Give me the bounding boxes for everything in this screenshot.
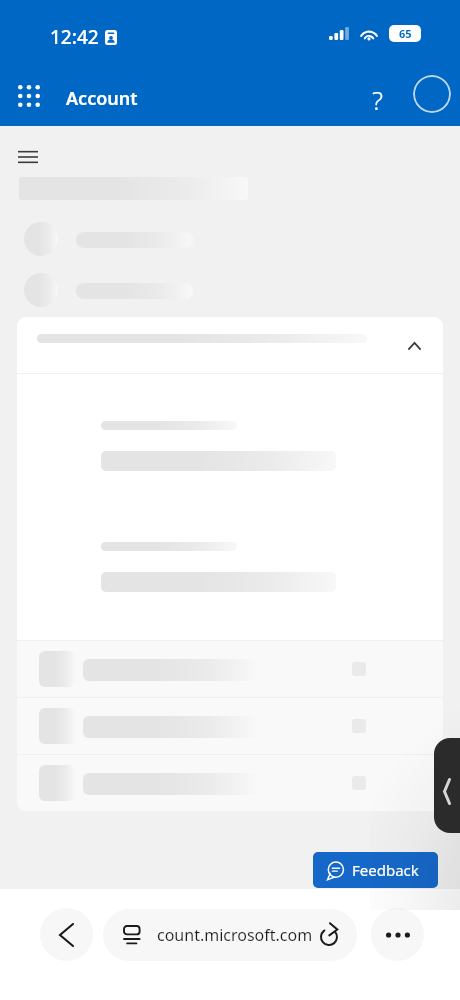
button[interactable] <box>17 641 443 697</box>
button[interactable]: Help <box>355 77 399 121</box>
button[interactable]: More options <box>371 908 424 961</box>
button[interactable]: Reload <box>312 918 346 952</box>
staticText: 65 <box>399 26 412 41</box>
button[interactable]: Menu <box>14 143 42 171</box>
staticText: Feedback <box>352 860 419 880</box>
button[interactable]: Feedback <box>313 852 438 888</box>
button[interactable]: Collapse <box>392 323 437 368</box>
button[interactable]: Account profile <box>413 75 451 113</box>
button[interactable]: count.microsoft.com <box>103 909 357 961</box>
staticText: ? <box>372 82 383 117</box>
button[interactable]: Back gesture <box>434 738 460 833</box>
button[interactable] <box>17 755 443 811</box>
staticText: 12:42 <box>50 24 99 50</box>
button[interactable] <box>17 698 443 754</box>
button[interactable]: App launcher <box>5 72 53 120</box>
staticText: count.microsoft.com <box>157 924 313 946</box>
staticText: Account <box>66 86 138 111</box>
button[interactable]: Back <box>40 908 93 961</box>
